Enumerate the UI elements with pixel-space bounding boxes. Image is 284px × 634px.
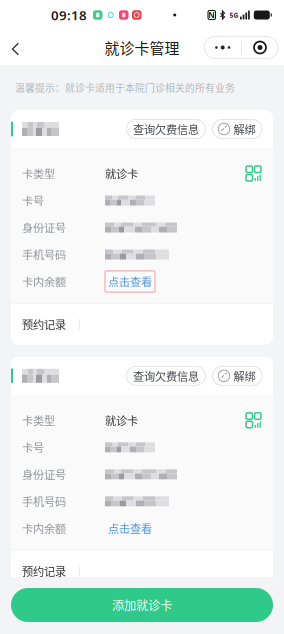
staticText: 09:18 bbox=[51, 6, 87, 24]
button[interactable]: 预约记录 bbox=[11, 304, 273, 345]
button[interactable]: 查询欠费信息 bbox=[126, 366, 205, 385]
staticText: 查询欠费信息 bbox=[133, 121, 199, 137]
button[interactable]: 二维码 bbox=[246, 413, 261, 428]
button[interactable]: 返回 bbox=[0, 28, 31, 66]
button[interactable]: 二维码 bbox=[246, 166, 261, 181]
button[interactable]: 点击查看 bbox=[105, 271, 155, 292]
staticText: 身份证号 bbox=[22, 219, 66, 236]
staticText: 卡类型 bbox=[22, 412, 55, 428]
staticText: 点击查看 bbox=[108, 520, 152, 536]
staticText: 卡内余额 bbox=[22, 520, 66, 536]
staticText: 查询欠费信息 bbox=[133, 368, 199, 384]
button[interactable]: 查询欠费信息 bbox=[126, 119, 205, 138]
button[interactable]: 解绑 bbox=[212, 119, 262, 138]
staticText: 手机号码 bbox=[22, 246, 66, 263]
staticText: 温馨提示：就诊卡适用于本院门诊相关的所有业务 bbox=[15, 80, 235, 95]
staticText: 解绑 bbox=[233, 121, 255, 137]
staticText: 卡类型 bbox=[22, 165, 55, 182]
button[interactable]: 预约记录 bbox=[11, 551, 273, 592]
staticText: 就诊卡 bbox=[105, 165, 138, 182]
staticText: 5G bbox=[229, 11, 238, 19]
button[interactable]: 更多 bbox=[204, 36, 241, 58]
staticText: 手机号码 bbox=[22, 493, 66, 509]
staticText: 预约记录 bbox=[22, 316, 66, 332]
staticText: 就诊卡管理 bbox=[104, 37, 179, 58]
staticText: 卡内余额 bbox=[22, 273, 66, 290]
staticText: 点击查看 bbox=[108, 273, 152, 290]
button[interactable]: 解绑 bbox=[212, 366, 262, 385]
button[interactable]: 关闭 bbox=[242, 36, 278, 58]
staticText: 预约记录 bbox=[22, 563, 66, 579]
staticText: 卡号 bbox=[22, 192, 44, 209]
staticText: 就诊卡 bbox=[105, 412, 138, 428]
staticText: N bbox=[208, 10, 215, 20]
staticText: 卡号 bbox=[22, 439, 44, 455]
staticText: 添加就诊卡 bbox=[112, 596, 172, 614]
staticText: 解绑 bbox=[233, 368, 255, 384]
button[interactable]: 添加就诊卡 bbox=[11, 588, 273, 622]
button[interactable]: 点击查看 bbox=[105, 518, 155, 539]
staticText: 身份证号 bbox=[22, 466, 66, 482]
